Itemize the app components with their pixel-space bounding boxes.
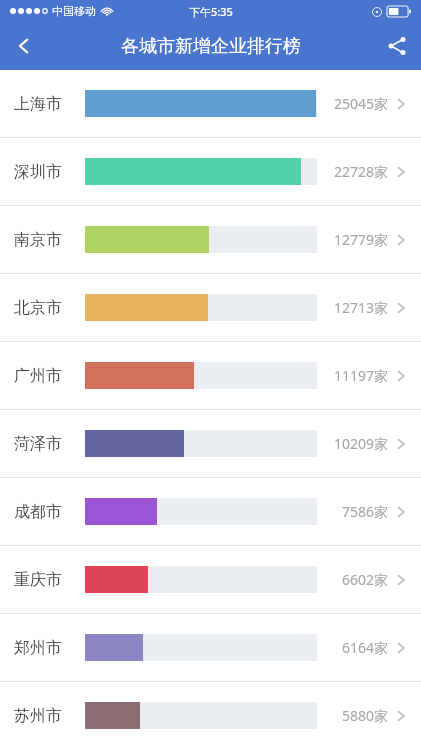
staticText: 25045家: [334, 94, 389, 113]
button[interactable]: 菏泽市: [0, 410, 421, 477]
staticText: 10209家: [334, 434, 389, 453]
button[interactable]: 重庆市: [0, 546, 421, 613]
button[interactable]: Back: [0, 22, 48, 70]
staticText: 苏州市: [14, 706, 62, 726]
button[interactable]: 北京市: [0, 274, 421, 341]
staticText: 中国移动: [52, 4, 96, 18]
staticText: 上海市: [14, 94, 62, 114]
staticText: 成都市: [14, 502, 62, 522]
staticText: 北京市: [14, 298, 62, 318]
staticText: 12713家: [334, 298, 389, 317]
button[interactable]: 苏州市: [0, 682, 421, 749]
button[interactable]: 上海市: [0, 70, 421, 137]
staticText: 郑州市: [14, 638, 62, 658]
staticText: 11197家: [334, 366, 389, 385]
button[interactable]: 广州市: [0, 342, 421, 409]
staticText: 广州市: [14, 366, 62, 386]
button[interactable]: 成都市: [0, 478, 421, 545]
staticText: 12779家: [334, 230, 389, 249]
staticText: 深圳市: [14, 162, 62, 182]
button[interactable]: Share: [373, 22, 421, 70]
button[interactable]: 深圳市: [0, 138, 421, 205]
staticText: 6164家: [342, 638, 389, 657]
button[interactable]: 南京市: [0, 206, 421, 273]
staticText: 5880家: [342, 706, 389, 725]
staticText: 6602家: [342, 570, 389, 589]
staticText: 南京市: [14, 230, 62, 250]
staticText: 菏泽市: [14, 434, 62, 454]
staticText: 各城市新增企业排行榜: [121, 35, 301, 58]
staticText: 下午5:35: [189, 4, 233, 19]
staticText: 重庆市: [14, 570, 62, 590]
staticText: 22728家: [334, 162, 389, 181]
button[interactable]: 郑州市: [0, 614, 421, 681]
staticText: 7586家: [342, 502, 389, 521]
